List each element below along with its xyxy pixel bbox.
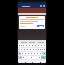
button[interactable]	[33, 52, 36, 55]
button[interactable]	[26, 48, 29, 51]
button[interactable]	[30, 52, 33, 55]
button[interactable]: Backspace	[42, 52, 46, 55]
button[interactable]: Comma	[22, 56, 25, 59]
button[interactable]	[35, 48, 37, 51]
button[interactable]: Period	[38, 56, 41, 59]
button[interactable]	[34, 44, 37, 47]
button[interactable]	[40, 44, 43, 47]
button[interactable]: Shift	[18, 52, 21, 55]
button[interactable]	[20, 48, 23, 51]
button[interactable]	[20, 44, 22, 47]
button[interactable]	[23, 48, 26, 51]
button[interactable]: Recents	[39, 61, 41, 63]
button[interactable]	[43, 44, 46, 47]
button[interactable]	[18, 44, 20, 47]
button[interactable]	[39, 52, 42, 55]
button[interactable]: Home	[31, 61, 33, 63]
button[interactable]	[24, 52, 27, 55]
button[interactable]	[37, 44, 40, 47]
button[interactable]	[29, 48, 32, 51]
button[interactable]	[28, 44, 31, 47]
button[interactable]	[25, 44, 28, 47]
button[interactable]: Symbols	[18, 56, 22, 59]
button[interactable]	[21, 52, 24, 55]
button[interactable]	[43, 48, 45, 51]
button[interactable]	[41, 48, 43, 51]
button[interactable]: Space	[25, 56, 38, 59]
button[interactable]: Enter	[41, 56, 46, 59]
button[interactable]	[39, 48, 41, 51]
button[interactable]	[31, 44, 34, 47]
button[interactable]	[32, 48, 35, 51]
button[interactable]	[22, 44, 25, 47]
button[interactable]: Back	[24, 61, 26, 63]
button[interactable]	[37, 25, 44, 27]
button[interactable]	[27, 52, 30, 55]
button[interactable]	[36, 52, 39, 55]
button[interactable]	[37, 48, 39, 51]
